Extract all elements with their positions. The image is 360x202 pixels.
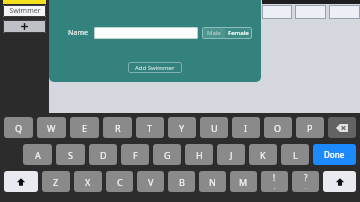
button[interactable]: E <box>70 117 99 138</box>
button[interactable]: I <box>232 117 260 138</box>
button[interactable]: H <box>185 144 213 165</box>
staticText: C <box>117 176 123 188</box>
staticText: B <box>179 176 185 188</box>
staticText: A <box>35 149 41 161</box>
staticText: Female <box>228 29 249 37</box>
button[interactable]: Backspace <box>328 117 356 138</box>
staticText: U <box>211 122 218 134</box>
staticText: P <box>307 122 313 134</box>
button[interactable]: T <box>136 117 164 138</box>
staticText: Y <box>179 122 185 134</box>
staticText: N <box>209 176 216 188</box>
staticText: , <box>274 183 276 191</box>
staticText: S <box>68 149 73 161</box>
button[interactable]: Done <box>313 144 356 165</box>
button[interactable]: Female <box>225 27 252 39</box>
button[interactable]: Q <box>4 117 33 138</box>
button[interactable]: F <box>121 144 149 165</box>
button[interactable]: Add <box>3 20 46 33</box>
staticText: K <box>260 149 266 161</box>
staticText: E <box>82 122 88 134</box>
staticText: L <box>293 149 298 161</box>
staticText: M <box>239 176 248 188</box>
button[interactable]: Male <box>202 27 225 39</box>
staticText: O <box>274 122 282 134</box>
staticText: J <box>230 149 233 161</box>
button[interactable]: M <box>230 171 257 192</box>
staticText: X <box>85 176 91 188</box>
staticText: G <box>164 149 171 161</box>
button[interactable]: R <box>103 117 132 138</box>
staticText: W <box>47 122 56 134</box>
staticText: ? <box>304 172 308 183</box>
staticText: Swimmer <box>9 6 41 16</box>
button[interactable]: ! <box>261 171 288 192</box>
button[interactable]: W <box>37 117 66 138</box>
staticText: I <box>244 122 248 134</box>
button[interactable]: O <box>264 117 292 138</box>
staticText: . <box>305 183 307 191</box>
staticText: Q <box>15 122 23 134</box>
staticText: Z <box>53 176 59 188</box>
staticText: Done <box>324 149 345 160</box>
staticText: D <box>100 149 107 161</box>
staticText: F <box>133 149 138 161</box>
staticText: H <box>196 149 203 161</box>
staticText: Add Swimmer <box>135 64 175 72</box>
button[interactable]: D <box>89 144 117 165</box>
button[interactable]: A <box>23 144 52 165</box>
button[interactable]: J <box>217 144 245 165</box>
button[interactable]: Swimmer <box>3 5 46 17</box>
staticText: Male <box>207 29 221 37</box>
staticText: T <box>147 122 153 134</box>
button[interactable]: Y <box>168 117 196 138</box>
button[interactable]: K <box>249 144 277 165</box>
button[interactable]: ? <box>292 171 319 192</box>
button[interactable]: Shift <box>323 171 356 192</box>
staticText: R <box>115 122 121 134</box>
button[interactable]: G <box>153 144 181 165</box>
button[interactable]: N <box>199 171 226 192</box>
button[interactable]: X <box>74 171 102 192</box>
staticText: ! <box>273 172 276 183</box>
button[interactable]: L <box>281 144 309 165</box>
button[interactable]: S <box>56 144 85 165</box>
button[interactable]: P <box>296 117 324 138</box>
button[interactable] <box>94 27 198 39</box>
button[interactable]: V <box>137 171 164 192</box>
staticText: Name <box>68 28 89 38</box>
staticText: V <box>148 176 154 188</box>
button[interactable]: Shift <box>4 171 38 192</box>
button[interactable]: Add Swimmer <box>128 62 182 73</box>
button[interactable]: Z <box>42 171 70 192</box>
button[interactable]: C <box>106 171 133 192</box>
button[interactable]: B <box>168 171 195 192</box>
button[interactable]: U <box>200 117 228 138</box>
